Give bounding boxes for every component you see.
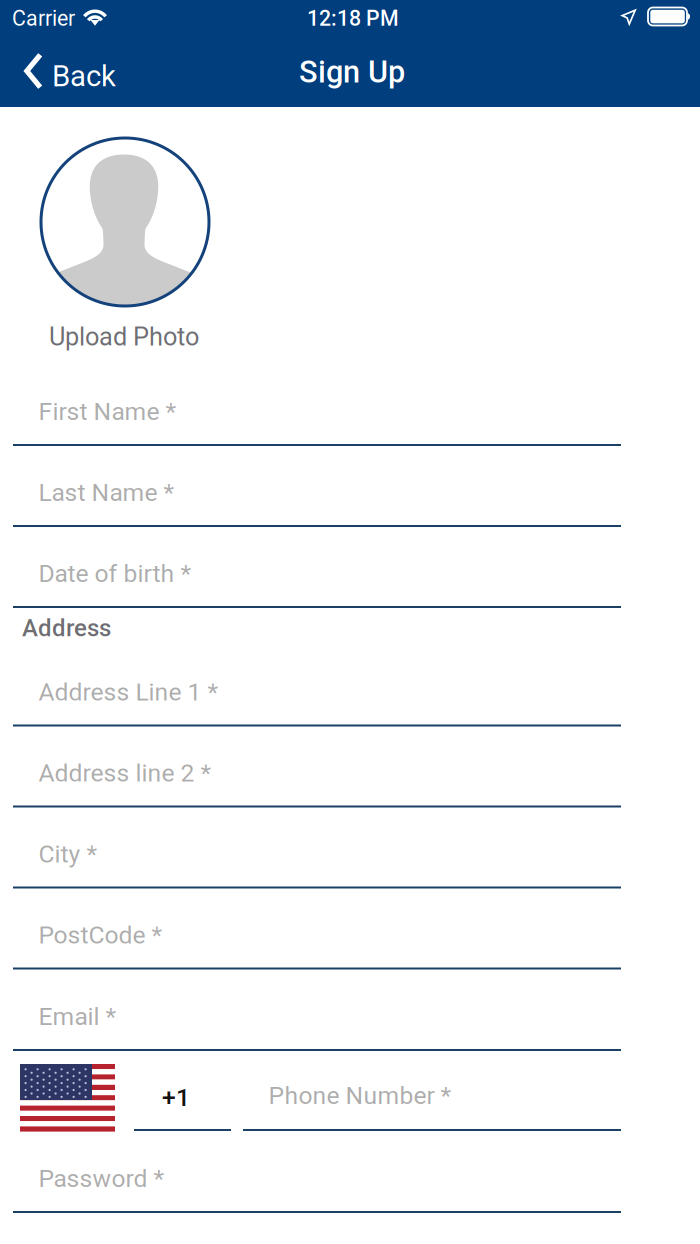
staticText: Carrier <box>12 6 75 31</box>
staticText: Phone Number * <box>268 1081 451 1110</box>
staticText: Password * <box>38 1164 164 1193</box>
staticText: City * <box>38 839 97 868</box>
staticText: 12:18 PM <box>307 6 399 31</box>
button[interactable]: Back <box>0 36 130 107</box>
staticText: Address Line 1 * <box>38 677 218 706</box>
staticText: PostCode * <box>38 920 162 949</box>
staticText: First Name * <box>38 397 176 426</box>
staticText: Email * <box>38 1002 116 1031</box>
staticText: Sign Up <box>299 54 405 90</box>
staticText: Back <box>52 59 116 93</box>
staticText: Address <box>22 614 111 642</box>
button[interactable]: Upload Photo <box>39 138 211 350</box>
staticText: +1 <box>162 1083 190 1112</box>
staticText: Upload Photo <box>49 322 199 352</box>
staticText: Address line 2 * <box>38 758 211 787</box>
staticText: Date of birth * <box>38 559 191 588</box>
staticText: Last Name * <box>38 478 174 507</box>
